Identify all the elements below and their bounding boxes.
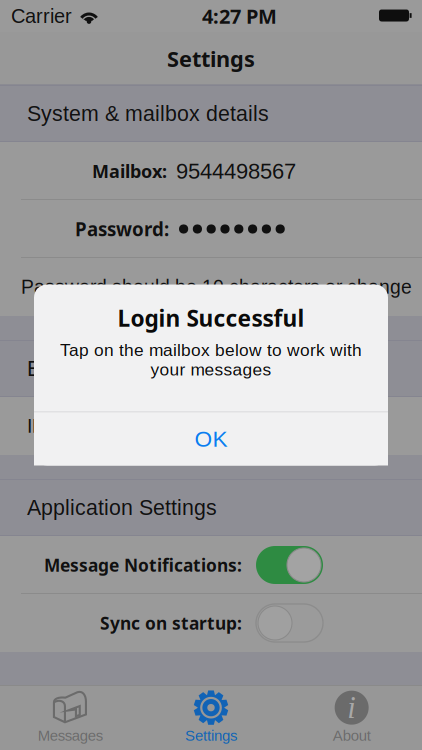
staticText: System & mailbox details	[27, 102, 269, 125]
button[interactable]: Mailbox:	[0, 142, 422, 200]
staticText: i	[347, 691, 356, 725]
button[interactable]: OK	[34, 412, 388, 465]
staticText: Mailbox:	[92, 159, 167, 183]
staticText: 9544498567	[176, 159, 296, 183]
staticText: IMAP Server	[27, 415, 136, 437]
button[interactable]: Password should be 10 characters or chan…	[0, 258, 422, 316]
staticText: your messages	[150, 360, 271, 379]
button[interactable]: i	[281, 685, 422, 750]
staticText: OK	[194, 426, 227, 452]
button[interactable]: IMAP Server	[0, 397, 422, 455]
staticText: Sync on startup:	[100, 611, 242, 635]
button[interactable]: Sync on startup:	[0, 594, 422, 652]
staticText: About	[333, 727, 371, 744]
staticText: Settings	[167, 44, 255, 73]
button[interactable]: Settings	[141, 685, 281, 750]
staticText: Email Settings	[27, 357, 165, 380]
staticText: Password should be 10 characters or chan…	[21, 276, 412, 298]
staticText: 4:27 PM	[202, 2, 277, 30]
staticText: Settings	[185, 727, 237, 744]
staticText: Login Successful	[117, 302, 304, 333]
staticText: Application Settings	[27, 496, 217, 519]
staticText: Carrier	[11, 5, 72, 27]
button[interactable]: Message Notifications:	[0, 536, 422, 594]
staticText: Tap on the mailbox below to work with	[60, 340, 362, 360]
button[interactable]: Messages	[0, 685, 141, 750]
staticText: Password:	[75, 216, 169, 242]
staticText: Messages	[38, 727, 103, 744]
button[interactable]: Password:	[0, 200, 422, 258]
staticText: Message Notifications:	[44, 553, 242, 577]
